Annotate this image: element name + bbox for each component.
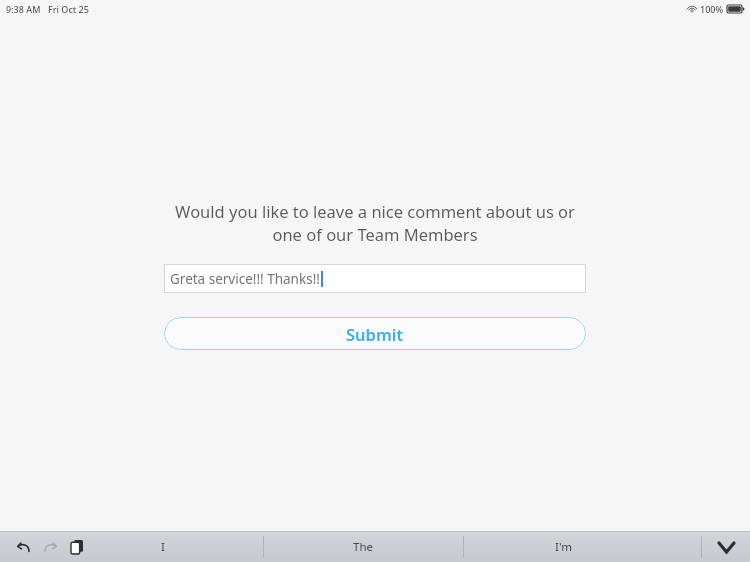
staticText: I	[161, 539, 165, 555]
button[interactable]: I	[63, 532, 263, 562]
staticText: I'm	[555, 539, 572, 555]
staticText: The	[353, 539, 373, 555]
button[interactable]: The	[263, 532, 463, 562]
staticText: 9:38 AM	[6, 3, 41, 15]
button[interactable]: Redo	[37, 534, 63, 560]
button[interactable]: Hide keyboard	[702, 532, 750, 562]
button[interactable]: Greta service!!! Thanks!!	[164, 264, 586, 293]
staticText: Greta service!!! Thanks!!	[170, 270, 320, 288]
staticText: Fri Oct 25	[48, 3, 89, 15]
staticText: 100%	[700, 3, 724, 15]
staticText: Would you like to leave a nice comment a…	[163, 200, 587, 246]
staticText: Submit	[346, 323, 404, 345]
button[interactable]: Submit	[164, 317, 586, 350]
button[interactable]: Paste	[64, 534, 90, 560]
button[interactable]: I'm	[463, 532, 663, 562]
button[interactable]: Undo	[10, 534, 36, 560]
